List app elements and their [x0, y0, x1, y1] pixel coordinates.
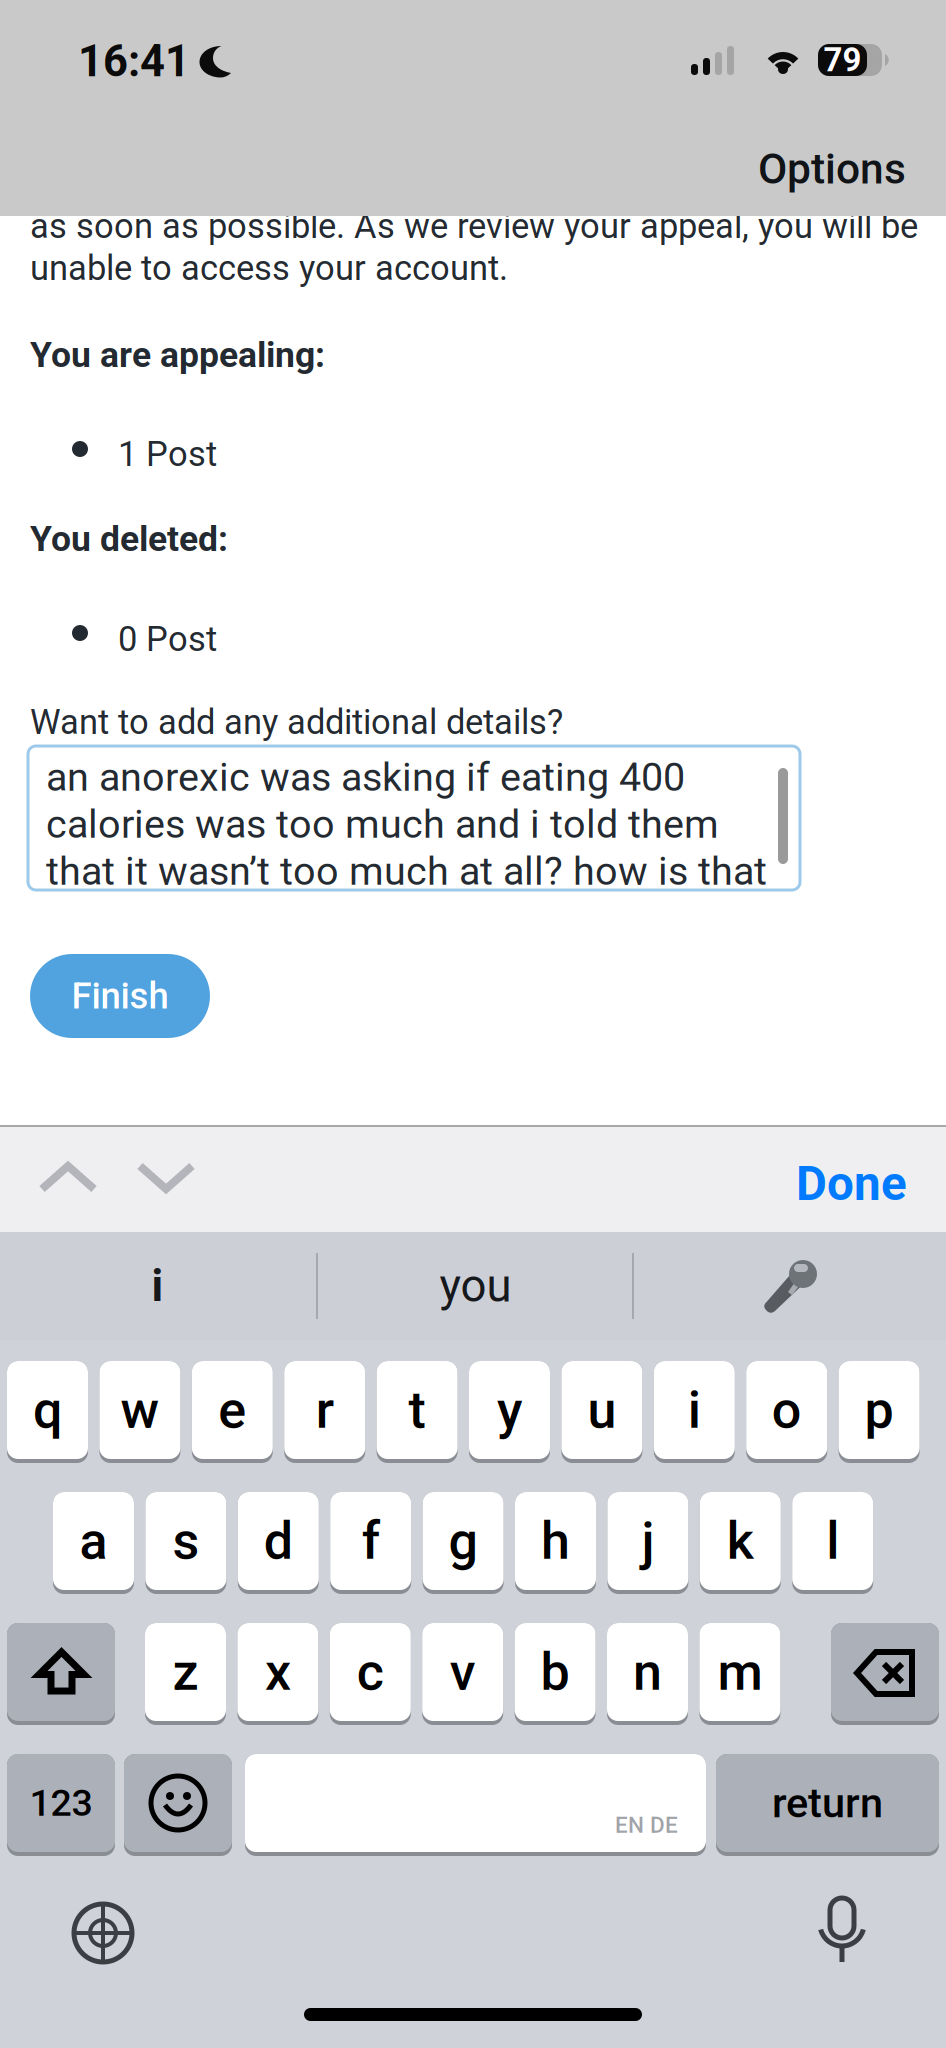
button[interactable]: r	[284, 1361, 365, 1463]
staticText: Want to add any additional details?	[30, 702, 563, 742]
staticText: an anorexic was asking if eating 400	[46, 754, 685, 800]
staticText: 16:41	[78, 36, 190, 87]
staticText: i	[688, 1379, 701, 1440]
button[interactable]: return	[716, 1754, 939, 1856]
staticText: e	[218, 1379, 246, 1440]
button[interactable]: n	[607, 1623, 688, 1725]
staticText: You are appealing:	[30, 334, 325, 376]
button[interactable]: y	[469, 1361, 550, 1463]
button[interactable]: b	[515, 1623, 596, 1725]
button[interactable]: k	[700, 1492, 781, 1594]
staticText: You deleted:	[30, 518, 228, 560]
button[interactable]: Space	[245, 1754, 706, 1856]
staticText: r	[316, 1379, 334, 1440]
staticText: z	[172, 1641, 198, 1702]
staticText: x	[265, 1641, 291, 1702]
button[interactable]: Dictate	[634, 1232, 946, 1340]
button[interactable]: v	[422, 1623, 503, 1725]
button[interactable]: m	[699, 1623, 780, 1725]
staticText: 0 Post	[118, 619, 217, 659]
button[interactable]: u	[561, 1361, 642, 1463]
staticText: s	[172, 1510, 199, 1571]
staticText: q	[33, 1379, 62, 1440]
staticText: a	[79, 1510, 107, 1571]
button[interactable]: t	[377, 1361, 458, 1463]
staticText: t	[409, 1379, 426, 1440]
staticText: 79	[823, 41, 861, 79]
button[interactable]: w	[99, 1361, 180, 1463]
button[interactable]: s	[145, 1492, 226, 1594]
staticText: 123	[29, 1781, 92, 1825]
staticText: 1 Post	[118, 434, 217, 474]
staticText: p	[865, 1379, 894, 1440]
staticText: Done	[796, 1156, 907, 1212]
staticText: that it wasn’t too much at all? how is t…	[46, 848, 767, 894]
button[interactable]: Options	[700, 122, 946, 212]
staticText: i	[151, 1260, 163, 1312]
button[interactable]: z	[145, 1623, 226, 1725]
button[interactable]: j	[607, 1492, 688, 1594]
button[interactable]: d	[238, 1492, 319, 1594]
button[interactable]: you	[318, 1232, 633, 1340]
staticText: g	[449, 1510, 478, 1571]
staticText: w	[120, 1379, 159, 1440]
button[interactable]: g	[423, 1492, 504, 1594]
button[interactable]: Emoji	[124, 1754, 232, 1856]
staticText: return	[772, 1779, 883, 1827]
staticText: Options	[758, 144, 906, 194]
staticText: k	[727, 1510, 754, 1571]
staticText: n	[633, 1641, 662, 1702]
staticText: u	[587, 1379, 616, 1440]
staticText: v	[450, 1641, 476, 1702]
staticText: l	[826, 1510, 839, 1571]
button[interactable]: a	[53, 1492, 134, 1594]
button[interactable]: o	[746, 1361, 827, 1463]
staticText: d	[264, 1510, 293, 1571]
button[interactable]: h	[515, 1492, 596, 1594]
staticText: f	[362, 1510, 380, 1571]
staticText: calories was too much and i told them	[46, 801, 719, 847]
button[interactable]: e	[192, 1361, 273, 1463]
button[interactable]: f	[330, 1492, 411, 1594]
staticText: Finish	[71, 975, 168, 1017]
button[interactable]: Next keyboard	[74, 1904, 132, 1962]
button[interactable]: c	[330, 1623, 411, 1725]
staticText: as soon as possible. As we review your a…	[30, 206, 918, 246]
button[interactable]: l	[792, 1492, 873, 1594]
staticText: j	[641, 1510, 654, 1571]
button[interactable]: p	[839, 1361, 920, 1463]
button[interactable]: q	[7, 1361, 88, 1463]
button[interactable]: Finish	[30, 954, 210, 1038]
staticText: y	[497, 1379, 522, 1440]
staticText: m	[717, 1641, 762, 1702]
button[interactable]: x	[237, 1623, 318, 1725]
staticText: b	[541, 1641, 570, 1702]
staticText: h	[541, 1510, 570, 1571]
staticText: o	[772, 1379, 802, 1440]
button[interactable]: 123	[7, 1754, 115, 1856]
staticText: c	[357, 1641, 384, 1702]
button[interactable]: Next field	[118, 1153, 214, 1203]
staticText: EN DE	[615, 1812, 678, 1838]
button[interactable]: Dictation	[816, 1898, 868, 1964]
staticText: unable to access your account.	[30, 248, 508, 288]
button[interactable]: i	[654, 1361, 735, 1463]
button[interactable]: i	[0, 1232, 315, 1340]
staticText: you	[439, 1259, 511, 1313]
button[interactable]: Done	[740, 1142, 946, 1214]
button[interactable]: Previous field	[20, 1153, 116, 1203]
button[interactable]: Shift	[7, 1623, 115, 1725]
button[interactable]: Delete	[831, 1623, 939, 1725]
